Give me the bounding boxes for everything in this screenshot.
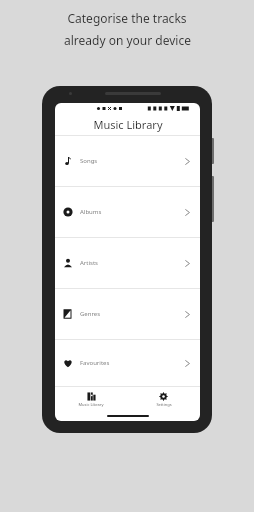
staticText: Music Library [78,402,104,407]
button[interactable]: Favourites [55,340,200,386]
staticText: Favourites [80,359,183,367]
staticText: Artists [80,259,183,267]
staticText: Albums [80,208,183,216]
staticText: Categorise the tracks [67,10,187,26]
staticText: already on your device [64,32,191,48]
button[interactable]: Settings [127,387,200,411]
button[interactable]: Artists [55,238,200,288]
button[interactable]: Genres [55,289,200,339]
button[interactable]: Albums [55,187,200,237]
button[interactable]: Songs [55,136,200,186]
button[interactable]: Music Library [55,387,127,411]
staticText: Settings [156,402,172,407]
staticText: Music Library [93,117,163,132]
staticText: Songs [80,157,183,165]
staticText: Genres [80,310,183,318]
